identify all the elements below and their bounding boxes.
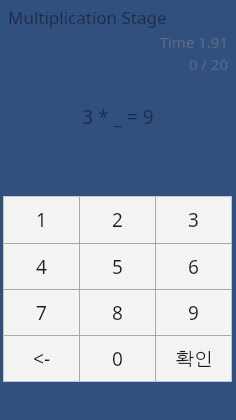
staticText: 2: [112, 207, 123, 233]
button[interactable]: 6: [156, 244, 231, 289]
button[interactable]: 5: [80, 244, 155, 289]
staticText: 1: [36, 207, 47, 233]
button[interactable]: 3: [156, 197, 231, 243]
button[interactable]: 2: [80, 197, 155, 243]
button[interactable]: 확인: [156, 336, 231, 381]
staticText: 9: [188, 300, 199, 326]
staticText: 4: [36, 254, 47, 280]
staticText: 3 * _ = 9: [82, 104, 154, 130]
staticText: 확인: [175, 347, 213, 371]
staticText: 0 / 20: [8, 54, 228, 74]
staticText: 3: [188, 207, 199, 233]
button[interactable]: 1: [4, 197, 79, 243]
button[interactable]: 8: [80, 290, 155, 335]
staticText: 0: [112, 346, 123, 372]
staticText: Multiplication Stage: [8, 6, 167, 29]
button[interactable]: 7: [4, 290, 79, 335]
staticText: 5: [112, 254, 123, 280]
button[interactable]: 0: [80, 336, 155, 381]
staticText: 6: [188, 254, 199, 280]
button[interactable]: <-: [4, 336, 79, 381]
staticText: Time 1.91: [8, 32, 228, 52]
button[interactable]: 4: [4, 244, 79, 289]
button[interactable]: 9: [156, 290, 231, 335]
staticText: 7: [36, 300, 47, 326]
staticText: 8: [112, 300, 123, 326]
staticText: <-: [33, 346, 50, 372]
